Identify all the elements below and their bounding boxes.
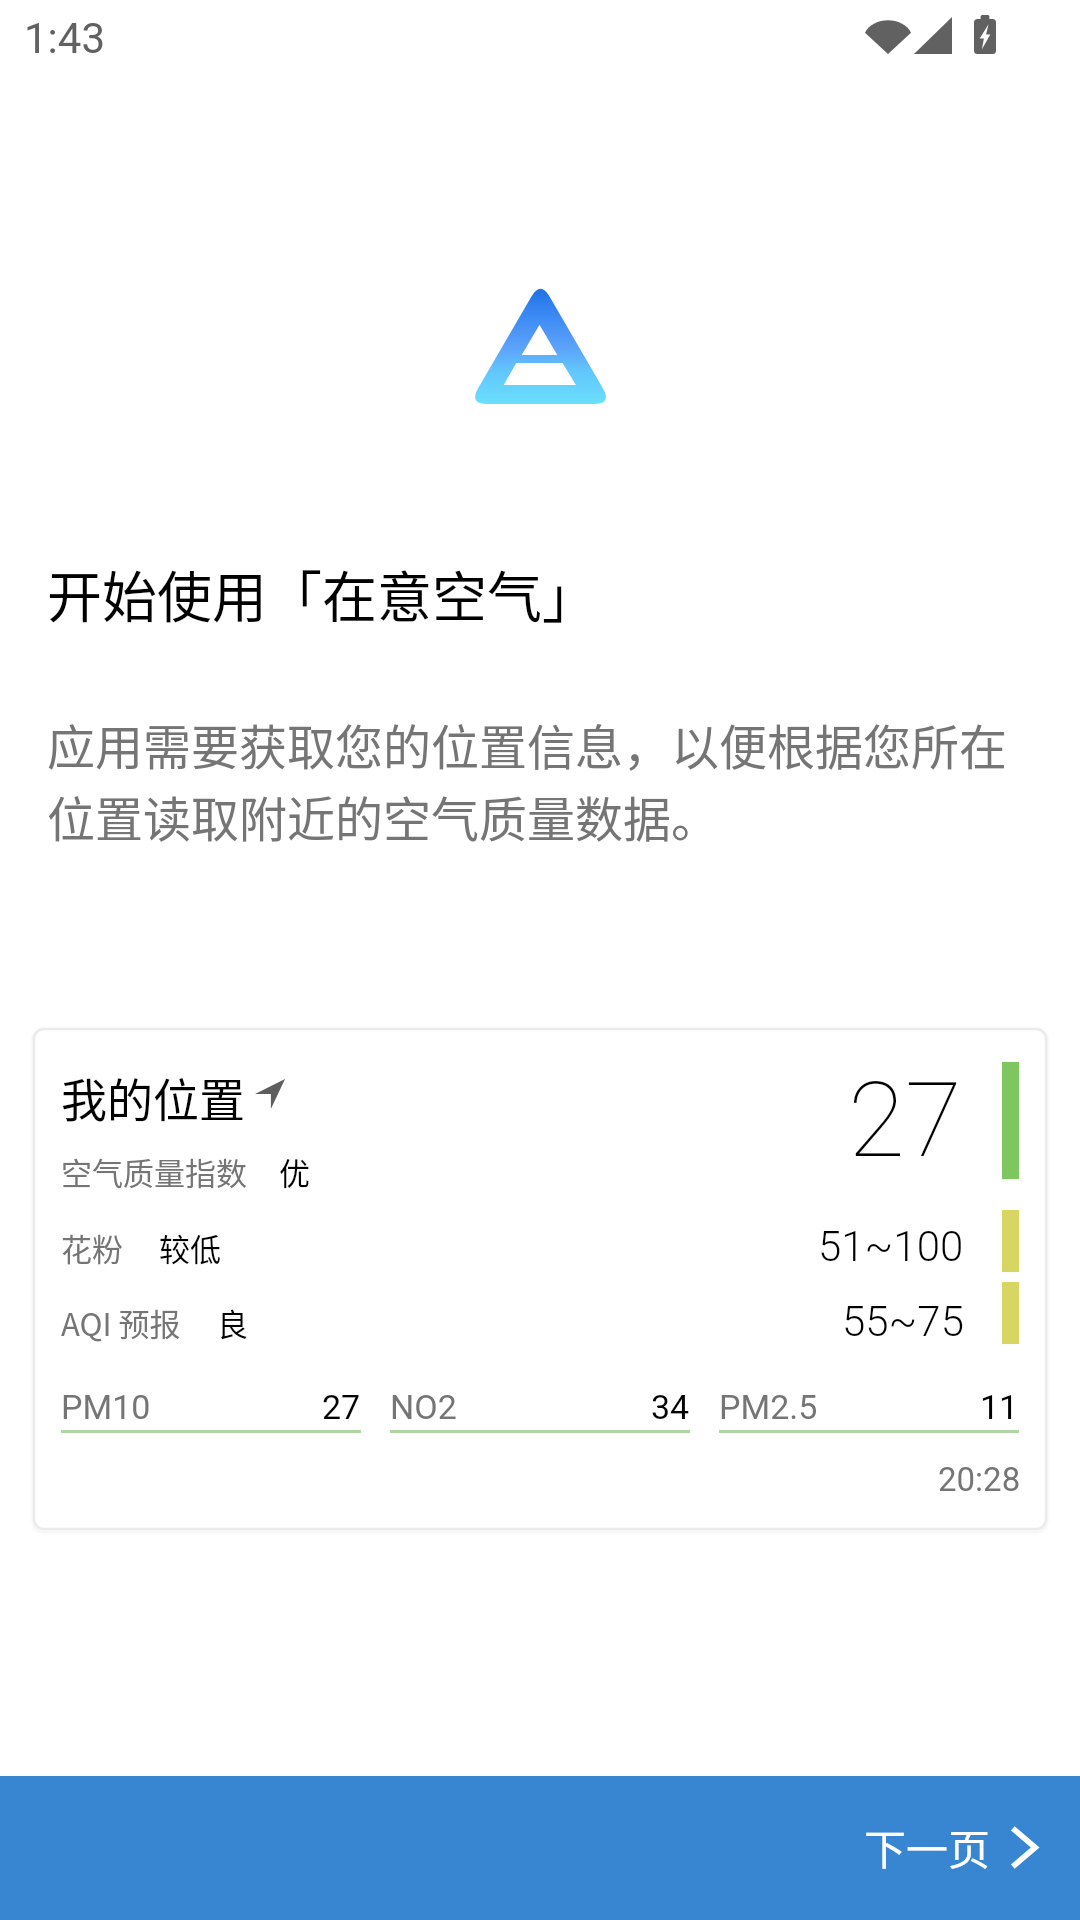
staticText: 下一页 <box>864 1816 991 1877</box>
staticText: 20:28 <box>938 1460 1021 1499</box>
button[interactable]: 下一页 <box>0 1776 1080 1920</box>
staticText: PM2.5 <box>719 1387 818 1427</box>
staticText: 花粉 <box>61 1225 123 1270</box>
staticText: 1:43 <box>24 14 105 63</box>
staticText: 34 <box>651 1387 690 1427</box>
staticText: 应用需要获取您的位置信息，以便根据您所在位置读取附近的空气质量数据。 <box>47 709 1015 851</box>
staticText: NO2 <box>390 1387 457 1427</box>
staticText: 空气质量指数 <box>61 1149 247 1194</box>
staticText: 开始使用「在意空气」 <box>47 553 598 633</box>
staticText: PM10 <box>61 1387 151 1427</box>
staticText: 51~100 <box>818 1222 964 1271</box>
button[interactable]: Current location <box>255 1079 285 1109</box>
staticText: 良 <box>217 1300 248 1345</box>
staticText: 27 <box>848 1060 962 1182</box>
button[interactable]: 27 <box>34 1029 1046 1529</box>
staticText: 55~75 <box>842 1297 964 1346</box>
staticText: 11 <box>980 1387 1019 1427</box>
staticText: 我的位置 <box>61 1064 245 1131</box>
staticText: 27 <box>322 1387 361 1427</box>
staticText: AQI 预报 <box>61 1300 181 1345</box>
staticText: 较低 <box>159 1225 221 1270</box>
staticText: 优 <box>279 1149 310 1194</box>
